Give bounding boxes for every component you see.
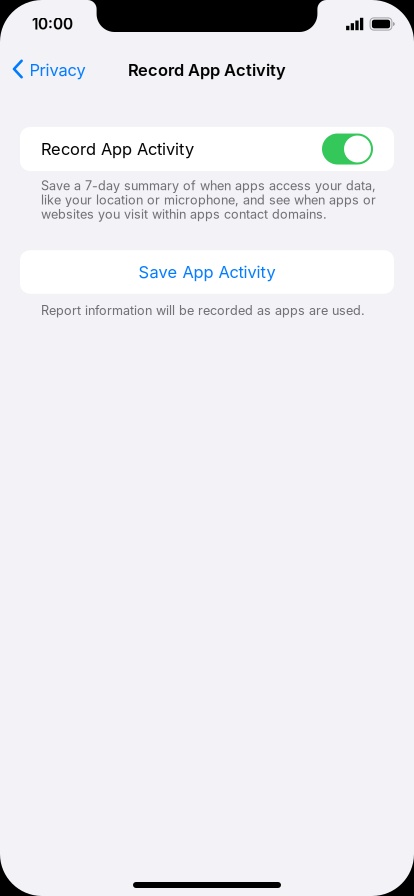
staticText: Report information will be recorded as a… <box>41 303 365 318</box>
button[interactable]: Privacy <box>0 52 96 88</box>
staticText: Record App Activity <box>41 139 194 159</box>
staticText: Record App Activity <box>128 60 286 80</box>
staticText: Save App Activity <box>138 262 275 282</box>
button[interactable]: Save App Activity <box>20 250 394 294</box>
staticText: Privacy <box>30 60 86 80</box>
staticText: 10:00 <box>32 15 73 33</box>
button[interactable]: Record App Activity <box>20 127 394 171</box>
staticText: Save a 7-day summary of when apps access… <box>41 178 376 222</box>
